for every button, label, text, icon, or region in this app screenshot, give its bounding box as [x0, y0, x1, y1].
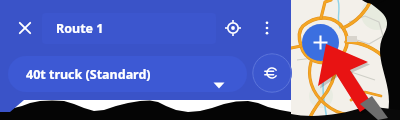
button[interactable]: Close: [12, 15, 38, 41]
button[interactable]: Toll costs: [252, 53, 292, 93]
button[interactable]: Add waypoint: [302, 24, 339, 61]
button[interactable]: 40t truck (Standard): [8, 56, 247, 92]
button[interactable]: More options: [256, 16, 278, 40]
button[interactable]: My location: [221, 16, 245, 40]
staticText: 40t truck (Standard): [26, 66, 151, 83]
staticText: Route 1: [56, 20, 104, 37]
button[interactable]: Route 1: [42, 13, 216, 44]
